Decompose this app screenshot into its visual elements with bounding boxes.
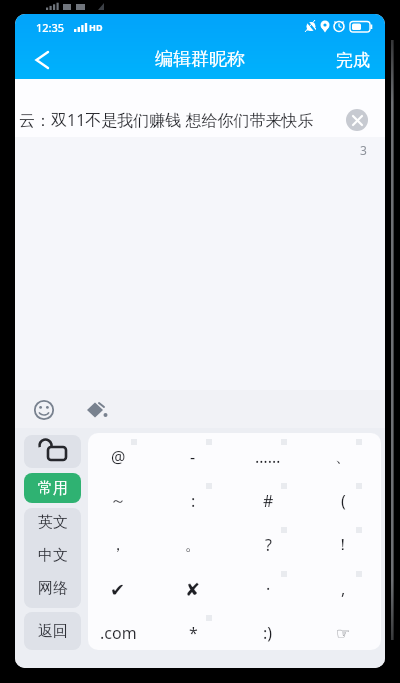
button[interactable]: …… xyxy=(232,436,304,478)
staticText: 云：双11不是我们赚钱 想给你们带来快乐 xyxy=(19,109,314,131)
button[interactable] xyxy=(24,435,81,468)
button[interactable]: 英文 xyxy=(24,506,81,539)
staticText: ( xyxy=(341,490,346,512)
button[interactable]: 常用 xyxy=(24,473,81,503)
staticText: 完成 xyxy=(336,50,370,71)
staticText: 12:35 xyxy=(36,20,65,35)
staticText: 、 xyxy=(335,447,351,467)
staticText: 返回 xyxy=(38,622,68,641)
staticText: @ xyxy=(111,446,126,468)
button[interactable]: 。 xyxy=(157,524,229,566)
staticText: ！ xyxy=(335,535,351,555)
button[interactable]: · xyxy=(232,568,304,610)
staticText: 中文 xyxy=(38,546,68,565)
button[interactable]: ? xyxy=(232,524,304,566)
staticText: - xyxy=(190,446,196,468)
staticText: # xyxy=(263,490,274,512)
staticText: 网络 xyxy=(38,579,68,598)
staticText: ～ xyxy=(110,491,126,511)
staticText: ， xyxy=(110,535,126,555)
staticText: ✘ xyxy=(185,579,201,600)
staticText: ✔ xyxy=(110,579,126,600)
staticText: ? xyxy=(265,534,272,556)
button[interactable]: .com xyxy=(82,612,154,654)
button[interactable]: ✔ xyxy=(82,568,154,610)
staticText: 常用 xyxy=(38,479,68,498)
staticText: , xyxy=(341,578,346,600)
button[interactable]: 网络 xyxy=(24,572,81,605)
button[interactable] xyxy=(15,79,385,137)
button[interactable]: - xyxy=(157,436,229,478)
button[interactable]: : xyxy=(157,480,229,522)
button[interactable]: # xyxy=(232,480,304,522)
button[interactable] xyxy=(23,42,59,78)
button[interactable]: ～ xyxy=(82,480,154,522)
button[interactable]: ✘ xyxy=(157,568,229,610)
button[interactable]: 中文 xyxy=(24,539,81,572)
button[interactable]: ！ xyxy=(307,524,379,566)
button[interactable]: 完成 xyxy=(329,45,377,75)
button[interactable]: 返回 xyxy=(24,612,81,650)
button[interactable]: @ xyxy=(82,436,154,478)
button[interactable]: * xyxy=(157,612,229,654)
staticText: :) xyxy=(263,622,273,644)
staticText: * xyxy=(189,622,198,644)
button[interactable]: ☞ xyxy=(307,612,379,654)
staticText: HD xyxy=(89,21,103,33)
button[interactable] xyxy=(79,394,111,426)
button[interactable]: :) xyxy=(232,612,304,654)
staticText: …… xyxy=(255,446,281,468)
button[interactable]: 、 xyxy=(307,436,379,478)
staticText: .com xyxy=(100,622,137,644)
button[interactable] xyxy=(346,109,368,131)
staticText: · xyxy=(266,578,271,600)
staticText: ☞ xyxy=(336,624,351,643)
button[interactable]: ， xyxy=(82,524,154,566)
button[interactable]: , xyxy=(307,568,379,610)
staticText: 3 xyxy=(360,142,367,158)
staticText: 编辑群昵称 xyxy=(155,48,245,71)
button[interactable] xyxy=(28,394,60,426)
button[interactable]: ( xyxy=(307,480,379,522)
staticText: 。 xyxy=(185,535,201,555)
staticText: : xyxy=(191,490,196,512)
staticText: 英文 xyxy=(38,513,68,532)
